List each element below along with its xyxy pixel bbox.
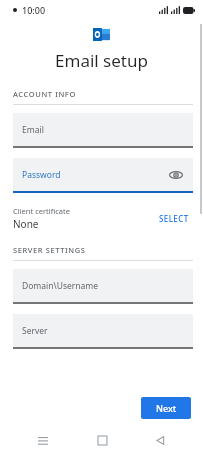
button[interactable]: Show password	[166, 165, 186, 185]
staticText: Client certificate	[13, 206, 70, 216]
button[interactable]: Domain\Username	[13, 269, 193, 304]
staticText: Domain\Username	[22, 280, 99, 292]
staticText: ACCOUNT INFO	[13, 89, 76, 99]
button[interactable]: Home	[87, 427, 117, 454]
staticText: Email setup	[0, 49, 203, 72]
button[interactable]: Recents	[28, 427, 58, 454]
button[interactable]: Next	[141, 397, 191, 419]
button[interactable]: Client certificate	[0, 201, 203, 235]
button[interactable]: Email	[13, 113, 193, 148]
staticText: Server	[22, 325, 48, 337]
button[interactable]: SELECT	[157, 209, 191, 228]
staticText: SERVER SETTINGS	[13, 245, 86, 255]
staticText: None	[13, 217, 39, 231]
button[interactable]: Password	[13, 158, 193, 193]
staticText: Email	[22, 124, 44, 136]
staticText: Next	[156, 402, 177, 414]
staticText: Password	[22, 169, 61, 181]
button[interactable]: Back	[145, 427, 175, 454]
staticText: SELECT	[159, 213, 189, 224]
button[interactable]: Server	[13, 314, 193, 349]
staticText: 10:00	[22, 4, 46, 16]
